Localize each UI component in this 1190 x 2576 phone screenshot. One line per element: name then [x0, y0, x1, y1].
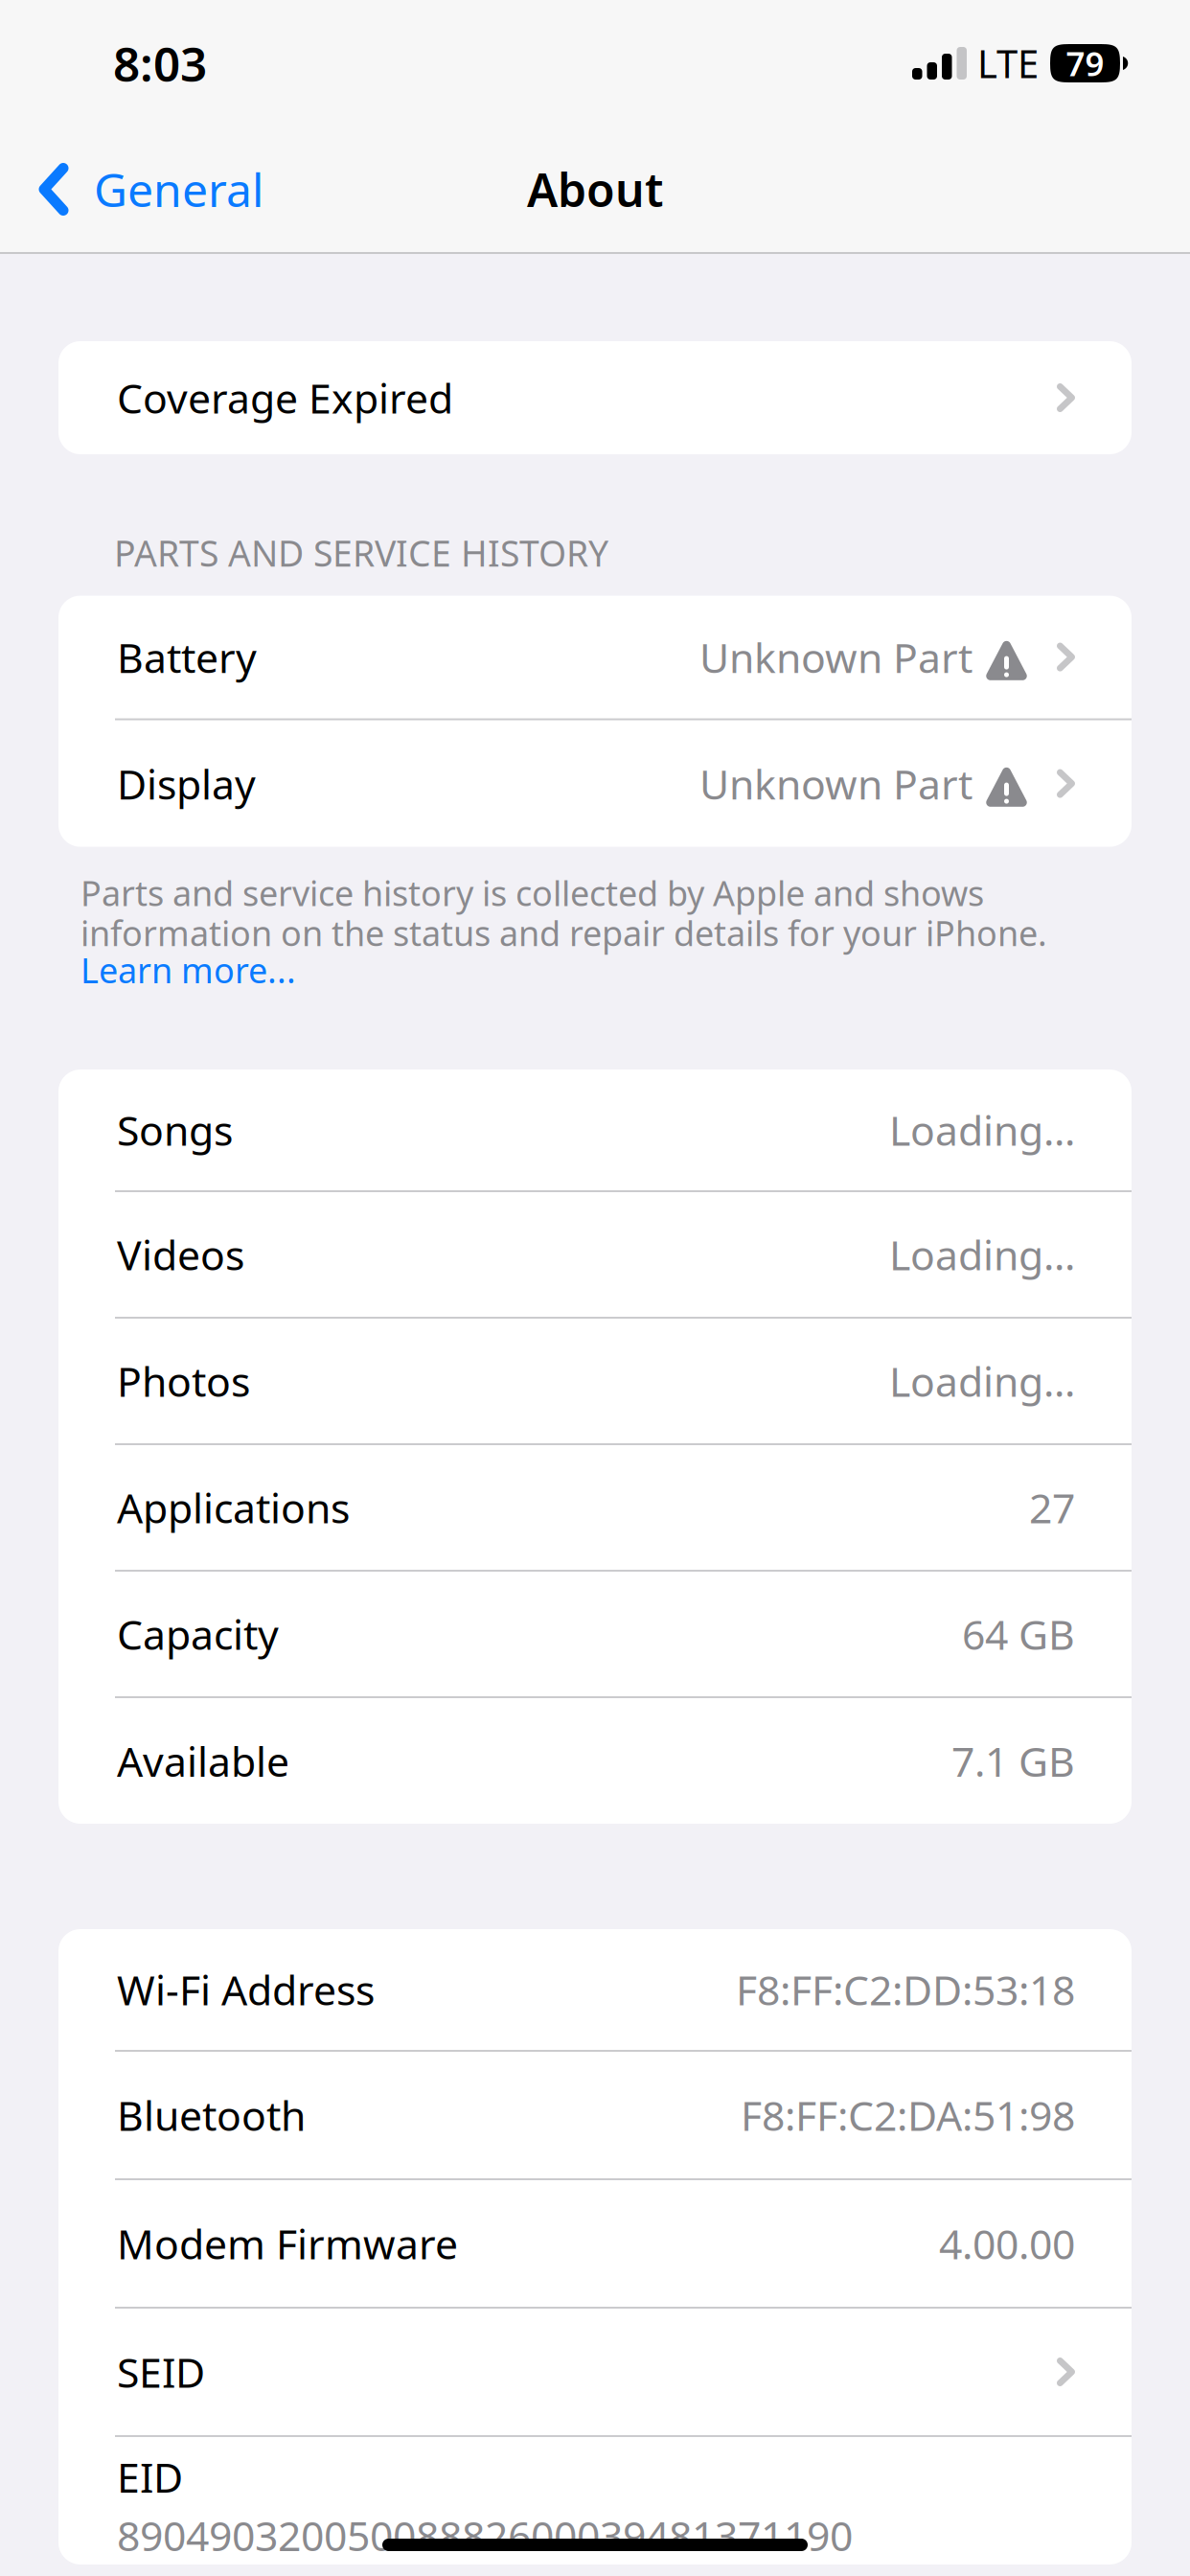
staticText: PARTS AND SERVICE HISTORY [114, 529, 608, 577]
button[interactable]: Display [58, 720, 1132, 847]
button[interactable]: SEID [58, 2309, 1132, 2435]
button[interactable]: Wi-Fi Address [58, 1929, 1132, 2050]
button[interactable]: Capacity [58, 1572, 1132, 1696]
staticText: 7.1 GB [951, 1734, 1075, 1788]
button[interactable]: Songs [58, 1069, 1132, 1190]
staticText: 4.00.00 [939, 2216, 1075, 2271]
button[interactable]: Applications [58, 1445, 1132, 1570]
button[interactable]: Photos [58, 1319, 1132, 1443]
staticText: Songs [117, 1103, 233, 1157]
staticText: Battery [117, 630, 257, 684]
staticText: F8:FF:C2:DD:53:18 [736, 1962, 1075, 2017]
staticText: Capacity [117, 1607, 279, 1661]
staticText: About [527, 159, 663, 220]
button[interactable]: Available [58, 1698, 1132, 1824]
staticText: Bluetooth [117, 2088, 306, 2142]
staticText: 8:03 [113, 32, 207, 95]
staticText: Display [117, 756, 256, 811]
staticText: Photos [117, 1354, 250, 1408]
staticText: Loading... [889, 1227, 1075, 1282]
button[interactable]: General [0, 141, 286, 237]
staticText: Coverage Expired [117, 371, 453, 425]
staticText: Loading... [889, 1103, 1075, 1157]
staticText: 79 [1066, 41, 1104, 85]
staticText: F8:FF:C2:DA:51:98 [741, 2088, 1075, 2142]
staticText: Unknown Part [699, 756, 973, 811]
staticText: SEID [117, 2345, 205, 2399]
button[interactable]: Bluetooth [58, 2052, 1132, 2178]
staticText: 27 [1029, 1480, 1075, 1535]
staticText: 89049032005008882600039481371190 [117, 2508, 853, 2562]
staticText: Modem Firmware [117, 2216, 458, 2271]
button[interactable]: Videos [58, 1192, 1132, 1317]
staticText: General [94, 159, 263, 220]
button[interactable]: EID [58, 2437, 1132, 2564]
staticText: Applications [117, 1480, 350, 1535]
staticText: LTE [977, 38, 1039, 89]
staticText: 64 GB [962, 1607, 1075, 1661]
button[interactable]: Modem Firmware [58, 2180, 1132, 2307]
staticText: Wi-Fi Address [117, 1962, 375, 2017]
staticText: Available [117, 1734, 289, 1788]
staticText: Parts and service history is collected b… [80, 870, 1047, 956]
staticText: Learn more... [80, 947, 296, 993]
staticText: Unknown Part [699, 630, 973, 684]
button[interactable]: Coverage Expired [58, 341, 1132, 454]
staticText: Videos [117, 1227, 244, 1282]
staticText: Loading... [889, 1354, 1075, 1408]
button[interactable]: Learn more... [80, 947, 1075, 993]
staticText: EID [117, 2450, 183, 2504]
button[interactable]: Battery [58, 596, 1132, 718]
